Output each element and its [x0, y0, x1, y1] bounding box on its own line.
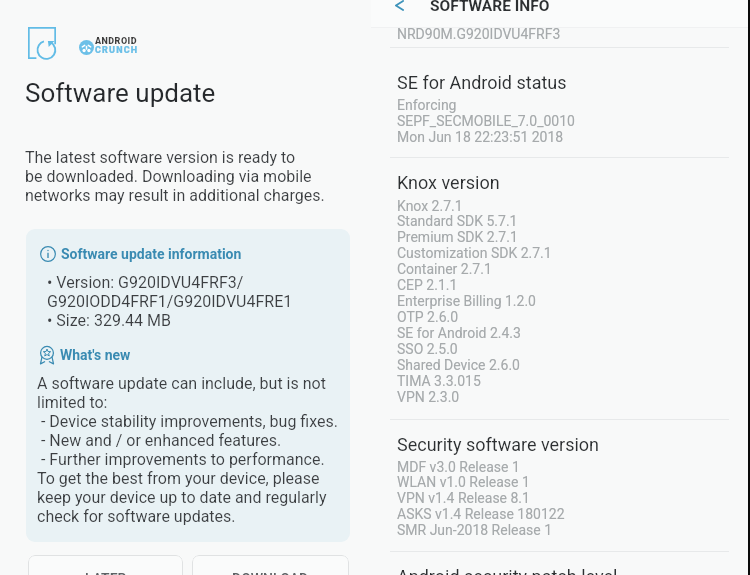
staticText: ANDROID [95, 36, 138, 47]
button[interactable]: Back [384, 0, 414, 20]
staticText: The latest software version is ready to … [25, 148, 325, 205]
staticText: Software update information [61, 246, 242, 262]
staticText: Software update [25, 78, 216, 108]
staticText: LATER [85, 571, 127, 575]
staticText: SE for Android status [397, 72, 567, 93]
staticText: Android security patch level [397, 566, 618, 575]
staticText: What's new [60, 347, 131, 363]
staticText: Security software version [397, 434, 600, 455]
staticText: • Version: G920IDVU4FRF3/ G920IODD4FRF1/… [47, 273, 293, 330]
button[interactable]: LATER [28, 555, 183, 575]
staticText: CRUNCH [95, 45, 139, 56]
staticText: SOFTWARE INFO [430, 0, 550, 15]
staticText: NRD90M.G920IDVU4FRF3 [397, 26, 561, 42]
staticText: Knox 2.7.1 Standard SDK 5.7.1 Premium SD… [397, 198, 552, 406]
other: Software update [28, 27, 56, 59]
staticText: DOWNLOAD [232, 571, 309, 575]
button[interactable]: DOWNLOAD [192, 555, 349, 575]
staticText: A software update can include, but is no… [37, 374, 338, 526]
staticText: Enforcing SEPF_SECMOBILE_7.0_0010 Mon Ju… [397, 97, 575, 145]
staticText: MDF v3.0 Release 1 WLAN v1.0 Release 1 V… [397, 459, 565, 539]
staticText: Knox version [397, 172, 500, 193]
